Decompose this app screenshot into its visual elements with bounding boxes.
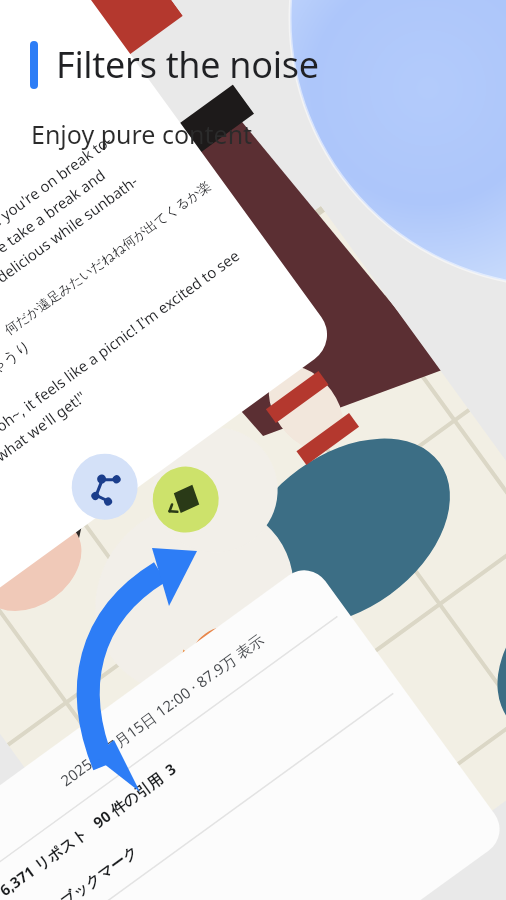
button[interactable]: Share bbox=[283, 593, 331, 641]
